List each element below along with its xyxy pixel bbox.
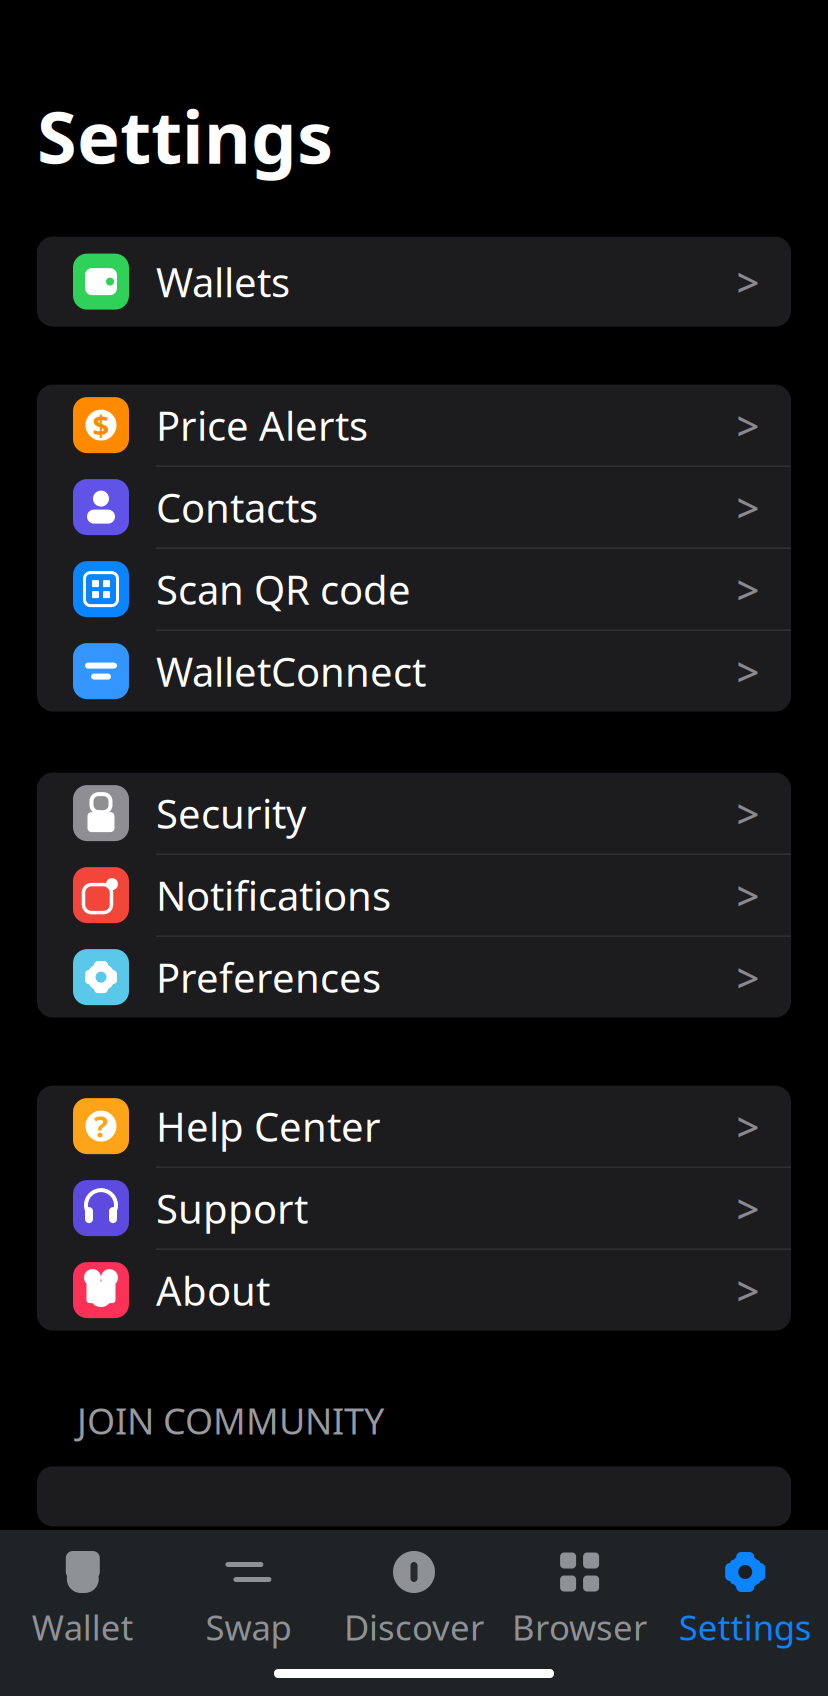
staticText: Settings (679, 1604, 812, 1650)
staticText: > (736, 563, 759, 616)
staticText: Price Alerts (156, 399, 368, 452)
button[interactable]: Wallets (37, 237, 791, 327)
button[interactable]: Contacts (37, 467, 791, 548)
staticText: Wallets (156, 255, 290, 308)
staticText: Browser (512, 1604, 647, 1650)
staticText: Support (156, 1182, 308, 1235)
staticText: WalletConnect (156, 645, 426, 698)
button[interactable]: Preferences (37, 937, 791, 1018)
staticText: > (736, 1264, 759, 1317)
button[interactable]: Support (37, 1168, 791, 1249)
button[interactable]: Scan QR code (37, 549, 791, 630)
staticText: > (736, 1182, 759, 1235)
button[interactable]: Swap (166, 1530, 331, 1660)
staticText: JOIN COMMUNITY (77, 1397, 384, 1444)
staticText: > (736, 1100, 759, 1153)
button[interactable]: Discover (331, 1530, 497, 1660)
staticText: > (736, 787, 759, 840)
button[interactable]: Notifications (37, 855, 791, 936)
button[interactable]: $ (37, 385, 791, 466)
button[interactable]: Wallet (0, 1530, 166, 1660)
staticText: > (736, 645, 759, 698)
staticText: Preferences (156, 951, 381, 1004)
staticText: Notifications (156, 869, 391, 922)
staticText: Help Center (156, 1100, 381, 1153)
staticText: Discover (344, 1604, 484, 1650)
staticText: Scan QR code (156, 563, 411, 616)
staticText: Settings (37, 88, 333, 184)
staticText: $ (92, 406, 109, 445)
staticText: Contacts (156, 481, 318, 534)
staticText: > (736, 869, 759, 922)
staticText: Swap (205, 1604, 291, 1650)
staticText: > (736, 255, 759, 308)
button[interactable]: Security (37, 773, 791, 854)
button[interactable]: About (37, 1250, 791, 1331)
staticText: Wallet (32, 1604, 134, 1650)
staticText: ? (94, 1107, 108, 1146)
staticText: About (156, 1264, 270, 1317)
staticText: > (736, 951, 759, 1004)
button[interactable]: WalletConnect (37, 631, 791, 712)
button[interactable]: Settings (662, 1530, 828, 1660)
button[interactable]: ? (37, 1086, 791, 1167)
staticText: Security (156, 787, 306, 840)
button[interactable]: Browser (497, 1530, 662, 1660)
staticText: > (736, 481, 759, 534)
staticText: > (736, 399, 759, 452)
